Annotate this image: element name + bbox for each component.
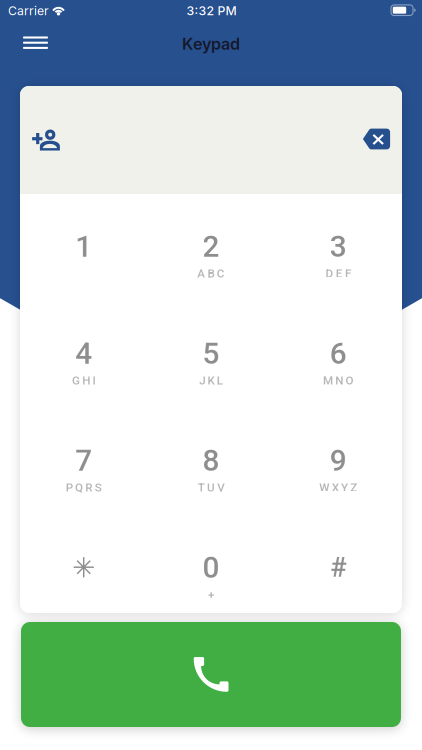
staticText: PQRS: [66, 481, 102, 494]
staticText: 6: [330, 336, 347, 371]
button[interactable]: 8: [147, 408, 275, 515]
staticText: TUV: [198, 481, 224, 494]
button[interactable]: 9: [275, 408, 402, 515]
staticText: Carrier: [8, 3, 49, 18]
button[interactable]: 4: [20, 301, 147, 408]
staticText: JKL: [199, 374, 223, 387]
staticText: 3: [330, 229, 347, 264]
staticText: 7: [75, 443, 92, 478]
staticText: ABC: [197, 267, 225, 280]
button[interactable]: Add contact: [23, 119, 69, 161]
staticText: 3:32 PM: [186, 3, 236, 18]
button[interactable]: 0: [147, 515, 275, 622]
button[interactable]: 7: [20, 408, 147, 515]
staticText: 8: [202, 443, 219, 478]
staticText: 2: [202, 229, 219, 264]
button[interactable]: Call: [21, 622, 401, 727]
button[interactable]: 5: [147, 301, 275, 408]
staticText: 0: [202, 550, 219, 585]
staticText: 5: [202, 336, 219, 371]
button[interactable]: Menu: [13, 23, 57, 63]
staticText: 4: [75, 336, 92, 371]
button[interactable]: Delete: [354, 118, 398, 160]
button[interactable]: 2: [147, 194, 275, 301]
staticText: DEF: [325, 267, 351, 280]
button[interactable]: 1: [20, 194, 147, 301]
button[interactable]: #: [275, 515, 402, 622]
staticText: WXYZ: [319, 481, 357, 494]
staticText: GHI: [72, 374, 95, 387]
staticText: #: [330, 551, 346, 583]
staticText: 9: [330, 443, 347, 478]
button[interactable]: 6: [275, 301, 402, 408]
button[interactable]: 3: [275, 194, 402, 301]
staticText: Keypad: [182, 34, 240, 54]
button[interactable]: Star: [20, 515, 147, 622]
staticText: +: [208, 588, 214, 601]
staticText: 1: [75, 229, 92, 264]
staticText: MNO: [323, 374, 354, 387]
